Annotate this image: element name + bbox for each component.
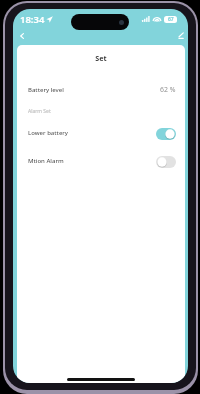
staticText: Mtion Alarm: [28, 157, 64, 165]
button[interactable]: Lower battery: [17, 126, 185, 140]
staticText: Alarm Set: [28, 108, 51, 115]
staticText: Battery level: [28, 86, 64, 94]
button[interactable]: Back: [15, 29, 29, 43]
staticText: 62 %: [160, 85, 176, 94]
staticText: Set: [95, 53, 107, 63]
button[interactable]: Mtion Alarm: [17, 154, 185, 168]
staticText: Lower battery: [28, 129, 69, 137]
staticText: 67: [168, 16, 174, 23]
staticText: 18:34: [20, 13, 45, 26]
button[interactable]: Battery level: [17, 83, 185, 97]
button[interactable]: Edit: [174, 29, 188, 43]
